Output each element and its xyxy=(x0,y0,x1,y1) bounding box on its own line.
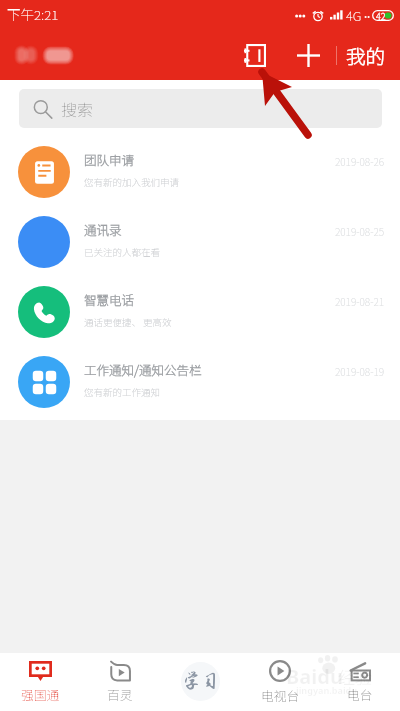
staticText: 学习 xyxy=(182,671,220,692)
staticText: 42 xyxy=(376,10,386,21)
staticText: 下午2:21 xyxy=(7,4,59,24)
staticText: 已关注的人都在看 xyxy=(84,245,161,259)
button[interactable]: 我的 xyxy=(341,30,391,80)
button[interactable]: 通讯录 xyxy=(0,207,400,277)
button[interactable]: 搜索 xyxy=(19,89,382,128)
button[interactable]: 团队申请 xyxy=(0,137,400,207)
staticText: 经验 xyxy=(338,664,372,689)
staticText: 智慧电话 xyxy=(84,290,135,308)
button[interactable]: 智慧电话 xyxy=(0,277,400,347)
button[interactable]: 电台 xyxy=(320,653,400,711)
button[interactable]: 通讯录 xyxy=(235,30,275,80)
staticText: 团队申请 xyxy=(84,150,135,168)
staticText: 4G xyxy=(346,6,362,25)
button[interactable]: 工作通知/通知公告栏 xyxy=(0,347,400,417)
staticText: Baidu xyxy=(286,663,343,690)
staticText: 强国通 xyxy=(21,685,60,704)
staticText: 电台 xyxy=(347,685,373,704)
button[interactable]: 强国通 xyxy=(0,653,80,711)
staticText: 搜索 xyxy=(61,97,94,120)
staticText: 2019-08-25 xyxy=(335,224,385,239)
staticText: 2019-08-21 xyxy=(335,294,385,309)
button[interactable]: 添加 xyxy=(288,30,328,80)
staticText: 2019-08-26 xyxy=(335,154,385,169)
button[interactable]: 学习 xyxy=(160,653,240,711)
staticText: 2019-08-19 xyxy=(335,364,385,379)
staticText: 百灵 xyxy=(107,685,133,704)
staticText: 工作通知/通知公告栏 xyxy=(84,360,202,378)
button[interactable]: 电视台 xyxy=(240,653,320,711)
staticText: jingyan.baidu xyxy=(296,684,358,696)
button[interactable]: 百灵 xyxy=(80,653,160,711)
staticText: 您有新的工作通知 xyxy=(84,385,161,399)
staticText: 电视台 xyxy=(261,686,300,705)
staticText: 我的 xyxy=(346,41,386,69)
staticText: 您有新的加入我们申请 xyxy=(84,175,180,189)
staticText: 通话更便捷、 更高效 xyxy=(84,315,172,329)
staticText: 通讯录 xyxy=(84,220,122,238)
